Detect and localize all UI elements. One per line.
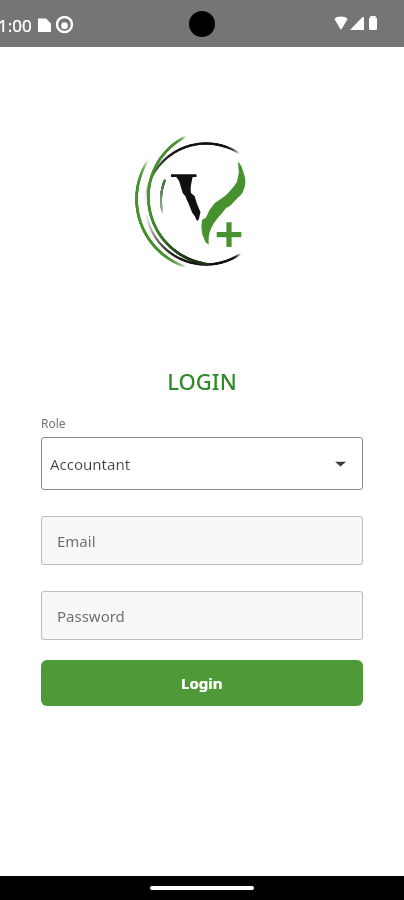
button[interactable]: Email	[41, 516, 363, 565]
staticText: Accountant	[50, 454, 131, 474]
button[interactable]: Login	[41, 660, 363, 706]
staticText: 1:00	[0, 14, 32, 37]
button[interactable]: Accountant	[41, 437, 363, 490]
staticText: Password	[57, 606, 125, 626]
staticText: LOGIN	[41, 366, 363, 396]
staticText: Email	[57, 531, 96, 551]
staticText: Login	[181, 673, 223, 693]
staticText: Role	[41, 415, 66, 431]
button[interactable]: Password	[41, 591, 363, 640]
